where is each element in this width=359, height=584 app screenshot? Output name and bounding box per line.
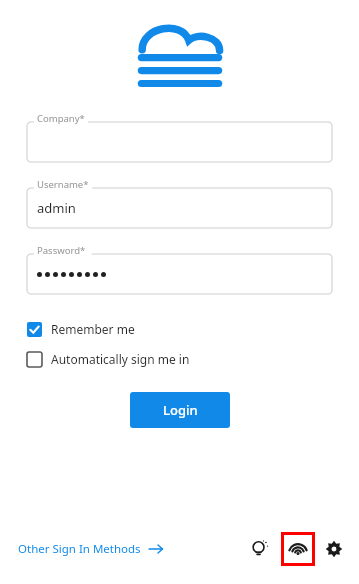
staticText: admin	[37, 199, 76, 217]
staticText: Other Sign In Methods	[18, 541, 141, 557]
button[interactable]: Automatically sign me in	[25, 348, 192, 370]
staticText: Remember me	[51, 321, 135, 337]
button[interactable]: Remember me	[25, 318, 137, 340]
staticText: Username*	[37, 178, 89, 191]
staticText: Company*	[37, 112, 85, 125]
staticText: Password*	[37, 244, 86, 257]
button[interactable]: Tips	[243, 532, 277, 566]
button[interactable]: Network	[281, 532, 315, 566]
staticText: Automatically sign me in	[51, 351, 190, 367]
staticText: Login	[163, 401, 198, 419]
button[interactable]: Settings	[317, 532, 351, 566]
button[interactable]: Login	[130, 392, 230, 428]
button[interactable]: Other Sign In Methods	[16, 537, 165, 561]
